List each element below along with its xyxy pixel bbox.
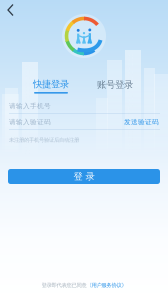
button[interactable]: 账号登录 bbox=[93, 79, 137, 93]
button[interactable]: 快捷登录 bbox=[29, 79, 73, 93]
staticText: 请输入手机号 bbox=[9, 102, 51, 110]
staticText: 登 录 bbox=[73, 171, 94, 182]
staticText: 登录即代表您已同意 bbox=[41, 282, 86, 289]
button[interactable]: 登录即代表您已同意 bbox=[0, 282, 168, 289]
button[interactable]: Back bbox=[3, 1, 23, 19]
staticText: 未注册的手机号验证后自动注册 bbox=[9, 137, 79, 143]
staticText: 账号登录 bbox=[97, 79, 133, 90]
button[interactable]: 发送验证码 bbox=[119, 117, 159, 126]
staticText: 发送验证码 bbox=[124, 118, 159, 126]
staticText: 《用户服务协议》 bbox=[86, 282, 126, 289]
staticText: 快捷登录 bbox=[33, 78, 69, 90]
button[interactable]: 登 录 bbox=[8, 169, 160, 184]
staticText: 请输入验证码 bbox=[9, 118, 51, 126]
